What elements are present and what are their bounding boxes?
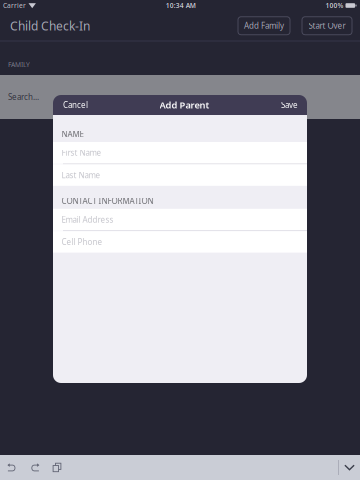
button[interactable]: Redo [23, 455, 46, 480]
button[interactable]: First Name [53, 142, 307, 163]
staticText: First Name [61, 147, 101, 158]
staticText: Last Name [61, 170, 100, 180]
button[interactable]: Add Family [238, 17, 290, 35]
staticText: 100% [325, 1, 343, 10]
button[interactable]: Save [275, 95, 298, 115]
staticText: 10:34 AM [166, 1, 196, 10]
staticText: Email Address [61, 214, 113, 225]
button[interactable]: Undo [1, 455, 23, 480]
staticText: Add Family [244, 20, 284, 31]
staticText: Carrier [3, 1, 26, 10]
button[interactable]: Last Name [53, 164, 307, 186]
staticText: FAMILY [8, 60, 30, 69]
staticText: NAME [61, 129, 83, 139]
button[interactable]: Email Address [53, 209, 307, 230]
staticText: Cell Phone [61, 236, 102, 247]
staticText: Child Check-In [10, 18, 90, 34]
staticText: Cancel [63, 100, 88, 110]
staticText: Add Parent [159, 99, 209, 111]
staticText: CONTACT INFORMATION [61, 196, 153, 206]
staticText: Save [281, 100, 298, 110]
button[interactable]: Start Over [302, 17, 352, 35]
button[interactable]: Cancel [63, 95, 94, 115]
button[interactable]: Paste [46, 455, 68, 480]
button[interactable]: Hide keyboard [339, 455, 360, 480]
staticText: Search... [8, 92, 39, 102]
button[interactable]: Search... [0, 75, 360, 119]
staticText: Start Over [308, 20, 345, 31]
button[interactable]: Cell Phone [53, 231, 307, 253]
